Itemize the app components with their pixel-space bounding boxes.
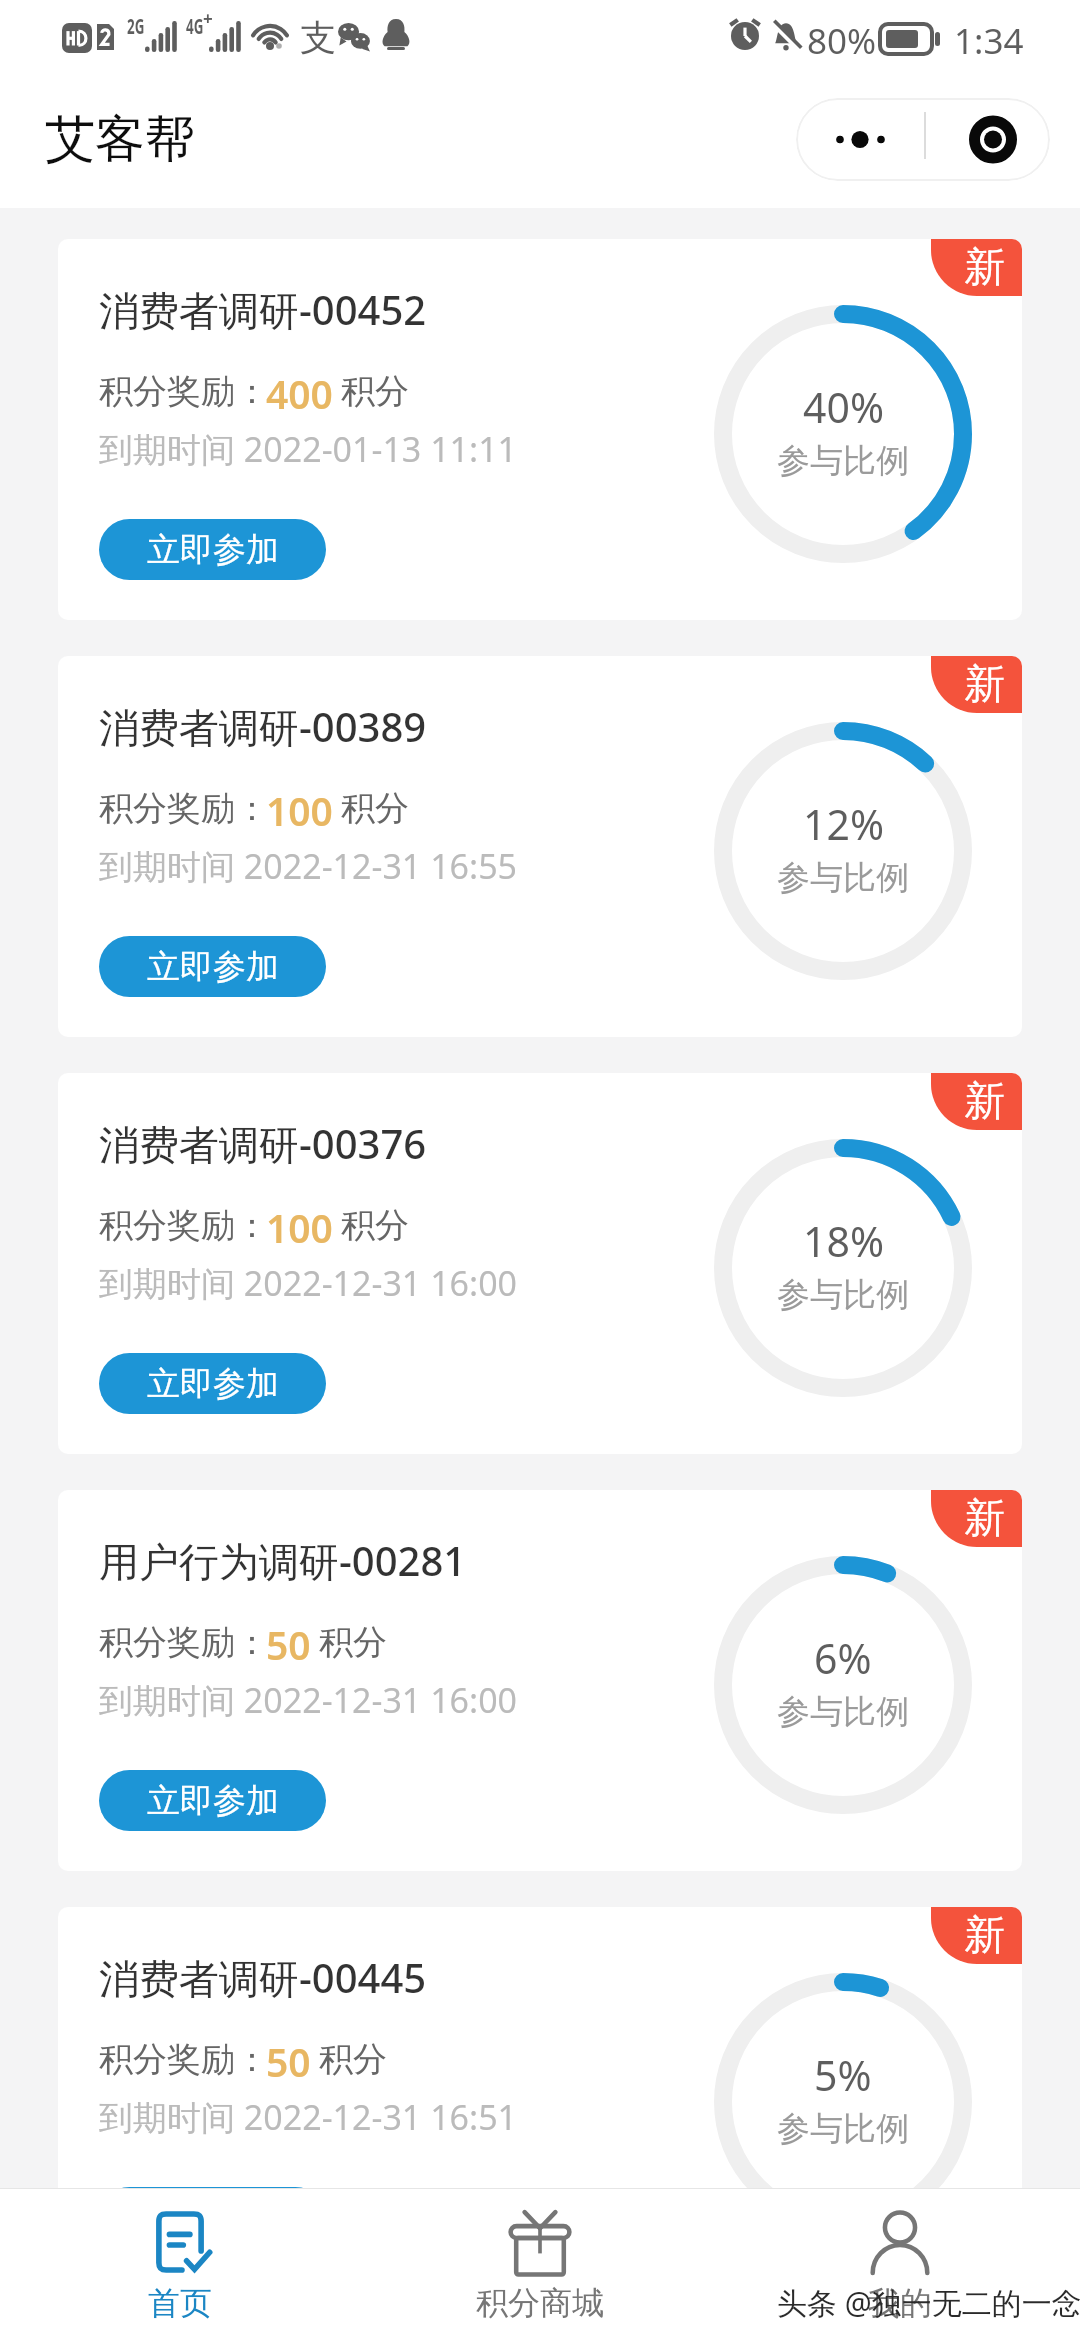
staticText: 消费者调研-00389 bbox=[99, 699, 427, 754]
staticText: 5% bbox=[814, 2047, 872, 2103]
staticText: 到期时间 2022-12-31 16:00 bbox=[99, 1677, 518, 1723]
staticText: 首页 bbox=[148, 2283, 212, 2323]
button[interactable]: 新 bbox=[58, 1490, 1022, 1871]
staticText: 参与比例 bbox=[777, 2108, 909, 2150]
staticText: 积分奖励： bbox=[99, 1204, 269, 1247]
staticText: 消费者调研-00452 bbox=[99, 282, 427, 337]
button[interactable]: 我的 bbox=[720, 2189, 1080, 2340]
staticText: 积分 bbox=[319, 1621, 387, 1664]
staticText: 4G bbox=[186, 12, 204, 41]
button[interactable]: 积分商城 bbox=[360, 2189, 720, 2340]
button[interactable]: 立即参加 bbox=[99, 519, 326, 580]
staticText: 12% bbox=[803, 796, 884, 852]
staticText: 新 bbox=[964, 1910, 1005, 1962]
button[interactable]: More options bbox=[796, 98, 1050, 181]
staticText: 立即参加 bbox=[147, 1363, 279, 1405]
staticText: + bbox=[203, 7, 213, 30]
staticText: 80% bbox=[807, 17, 877, 65]
staticText: 100 bbox=[266, 1201, 333, 1249]
button[interactable]: 立即参加 bbox=[99, 936, 326, 997]
staticText: 积分奖励： bbox=[99, 2038, 269, 2081]
staticText: 积分奖励： bbox=[99, 787, 269, 830]
staticText: 头条 @独一无二的一念 bbox=[777, 2282, 1080, 2323]
staticText: 新 bbox=[964, 242, 1005, 294]
staticText: 立即参加 bbox=[147, 529, 279, 571]
staticText: 1:34 bbox=[954, 17, 1024, 65]
staticText: 积分奖励： bbox=[99, 1621, 269, 1664]
button[interactable]: 新 bbox=[58, 239, 1022, 620]
staticText: 50 bbox=[266, 2035, 311, 2083]
staticText: 参与比例 bbox=[777, 1691, 909, 1733]
staticText: 积分 bbox=[319, 2038, 387, 2081]
staticText: 参与比例 bbox=[777, 440, 909, 482]
staticText: 用户行为调研-00281 bbox=[99, 1533, 467, 1588]
staticText: 积分商城 bbox=[476, 2283, 604, 2323]
button[interactable]: 新 bbox=[58, 656, 1022, 1037]
staticText: 立即参加 bbox=[147, 2197, 279, 2239]
staticText: 到期时间 2022-12-31 16:00 bbox=[99, 1260, 518, 1306]
staticText: 到期时间 2022-12-31 16:51 bbox=[99, 2094, 518, 2140]
staticText: 新 bbox=[964, 1493, 1005, 1545]
staticText: 6% bbox=[814, 1630, 872, 1686]
staticText: 积分 bbox=[341, 1204, 409, 1247]
staticText: 立即参加 bbox=[147, 1780, 279, 1822]
button[interactable]: 首页 bbox=[0, 2189, 360, 2340]
staticText: 新 bbox=[964, 659, 1005, 711]
button[interactable]: 新 bbox=[58, 1073, 1022, 1454]
staticText: 参与比例 bbox=[777, 857, 909, 899]
staticText: 立即参加 bbox=[147, 946, 279, 988]
staticText: 到期时间 2022-12-31 16:55 bbox=[99, 843, 518, 889]
staticText: 我的 bbox=[868, 2283, 932, 2323]
button[interactable]: 立即参加 bbox=[99, 2187, 326, 2248]
button[interactable]: 立即参加 bbox=[99, 1353, 326, 1414]
staticText: 消费者调研-00376 bbox=[99, 1116, 427, 1171]
staticText: 新 bbox=[964, 1076, 1005, 1128]
staticText: 艾客帮 bbox=[45, 108, 195, 171]
staticText: 积分 bbox=[341, 370, 409, 413]
staticText: 400 bbox=[266, 367, 333, 415]
button[interactable]: 立即参加 bbox=[99, 1770, 326, 1831]
staticText: 50 bbox=[266, 1618, 311, 1666]
staticText: 积分奖励： bbox=[99, 370, 269, 413]
staticText: 到期时间 2022-01-13 11:11 bbox=[99, 426, 518, 472]
staticText: 2G bbox=[127, 12, 145, 41]
staticText: 参与比例 bbox=[777, 1274, 909, 1316]
staticText: 支 bbox=[300, 15, 336, 60]
button[interactable]: 新 bbox=[58, 1907, 1022, 2288]
staticText: 积分 bbox=[341, 787, 409, 830]
staticText: 100 bbox=[266, 784, 333, 832]
staticText: 消费者调研-00445 bbox=[99, 1950, 427, 2005]
staticText: 40% bbox=[803, 379, 884, 435]
staticText: 18% bbox=[803, 1213, 884, 1269]
